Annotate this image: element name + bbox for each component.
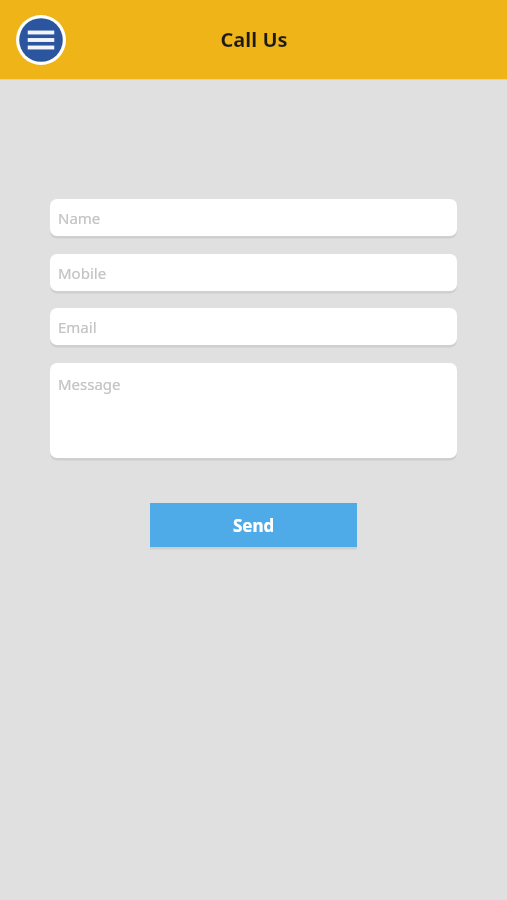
staticText: Name	[58, 208, 101, 228]
staticText: Call Us	[220, 26, 288, 53]
button[interactable]: Open navigation menu	[15, 14, 67, 66]
button[interactable]: Email	[50, 308, 457, 345]
button[interactable]: Send	[150, 503, 357, 547]
button[interactable]: Mobile	[50, 254, 457, 291]
staticText: Message	[58, 374, 121, 394]
staticText: Send	[233, 514, 275, 537]
button[interactable]: Name	[50, 199, 457, 236]
staticText: Mobile	[58, 263, 107, 283]
button[interactable]: Message	[50, 363, 457, 458]
staticText: Email	[58, 317, 97, 337]
